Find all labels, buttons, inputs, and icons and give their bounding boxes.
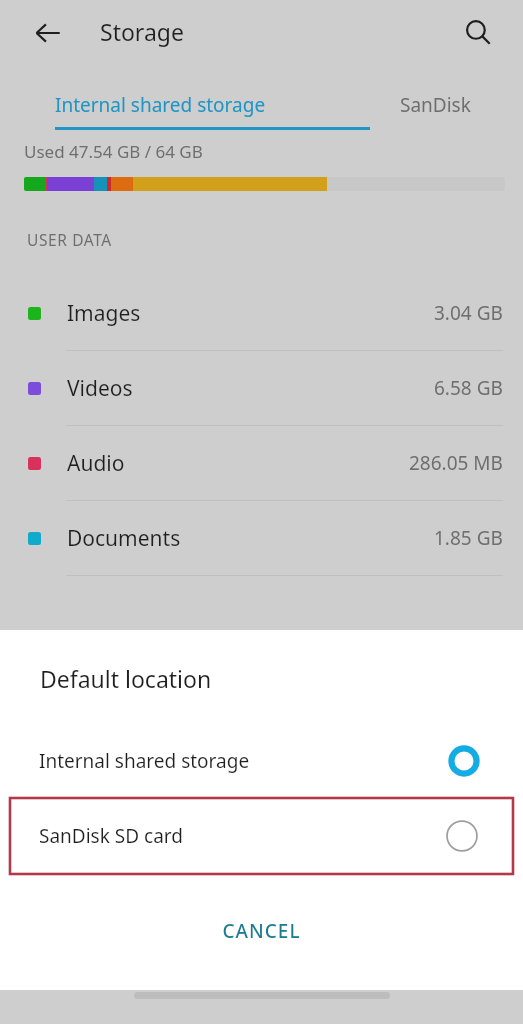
staticText: 1.85 GB <box>434 525 503 551</box>
button[interactable]: Videos <box>0 351 523 425</box>
staticText: Internal shared storage <box>39 748 250 774</box>
staticText: 3.04 GB <box>434 300 503 326</box>
staticText: Used 47.54 GB / 64 GB <box>24 140 203 163</box>
button[interactable]: SanDisk SD card <box>10 798 513 874</box>
staticText: 286.05 MB <box>409 450 503 476</box>
staticText: Documents <box>67 524 181 553</box>
staticText: USER DATA <box>27 229 112 250</box>
staticText: SanDisk SD card <box>39 823 183 849</box>
button[interactable]: Search <box>455 9 501 55</box>
button[interactable]: Documents <box>0 501 523 575</box>
button[interactable]: Images <box>0 276 523 350</box>
staticText: Images <box>67 299 141 328</box>
staticText: Default location <box>40 663 212 694</box>
staticText: Storage <box>100 16 184 47</box>
staticText: 6.58 GB <box>434 375 503 401</box>
staticText: SanDisk <box>400 92 471 118</box>
button[interactable]: CANCEL <box>204 908 319 954</box>
button[interactable]: SanDisk <box>390 66 523 134</box>
staticText: Audio <box>67 449 125 478</box>
button[interactable]: Internal shared storage <box>0 730 523 792</box>
button[interactable]: Back <box>24 9 72 57</box>
button[interactable]: Internal shared storage <box>24 66 386 134</box>
staticText: Internal shared storage <box>55 92 266 118</box>
button[interactable]: Audio <box>0 426 523 500</box>
staticText: Videos <box>67 374 133 403</box>
staticText: CANCEL <box>222 918 301 944</box>
